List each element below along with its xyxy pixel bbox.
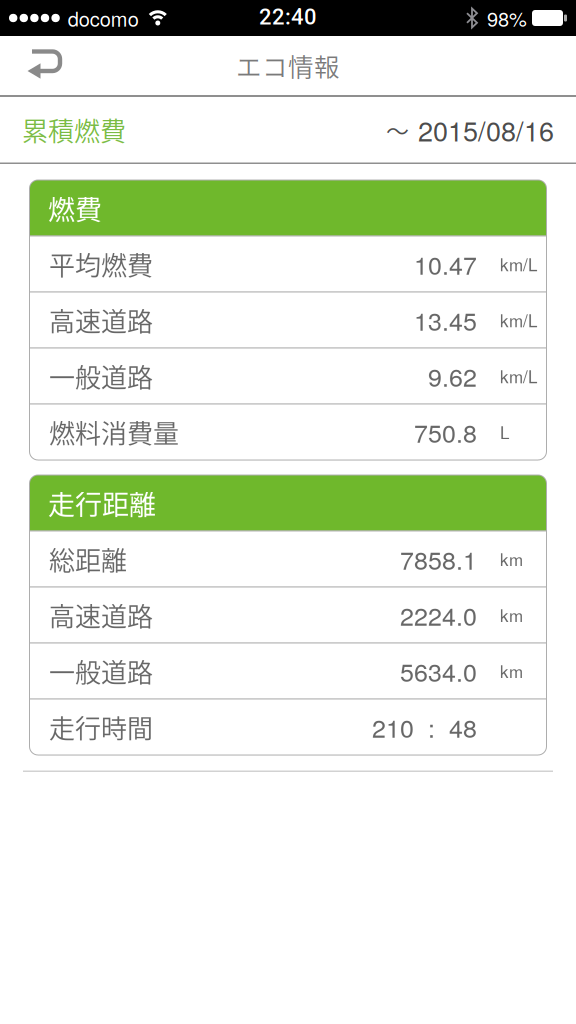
staticText: 平均燃費	[49, 245, 153, 283]
staticText: km/L	[500, 364, 537, 388]
staticText: 燃料消費量	[49, 413, 179, 451]
staticText: 5634.0	[400, 653, 477, 689]
staticText: 9.62	[428, 358, 477, 394]
staticText: 22:40	[259, 4, 317, 30]
staticText: 10.47	[414, 246, 477, 282]
staticText: 燃費	[48, 188, 102, 228]
staticText: 13.45	[414, 302, 477, 338]
staticText: 98%	[487, 4, 527, 32]
staticText: km	[500, 603, 523, 627]
staticText: 一般道路	[49, 652, 153, 690]
staticText: km	[500, 547, 523, 571]
staticText: 総距離	[49, 540, 127, 578]
staticText: 〜	[386, 113, 409, 146]
staticText: 一般道路	[49, 357, 153, 395]
staticText: 高速道路	[49, 596, 153, 634]
button[interactable]: Back	[26, 46, 66, 84]
staticText: 750.8	[414, 414, 477, 450]
staticText: 累積燃費	[22, 111, 126, 148]
staticText: エコ情報	[236, 47, 340, 84]
staticText: km	[500, 659, 523, 683]
staticText: km/L	[500, 252, 537, 276]
staticText: docomo	[68, 4, 139, 32]
staticText: km/L	[500, 308, 537, 332]
staticText: 7858.1	[400, 541, 477, 577]
staticText: 高速道路	[49, 301, 153, 339]
staticText: 2015/08/16	[418, 110, 554, 149]
staticText: 2224.0	[400, 597, 477, 633]
staticText: 走行時間	[49, 708, 153, 746]
staticText: L	[500, 420, 509, 444]
staticText: 走行距離	[48, 483, 156, 523]
staticText: 210 : 48	[372, 709, 477, 745]
